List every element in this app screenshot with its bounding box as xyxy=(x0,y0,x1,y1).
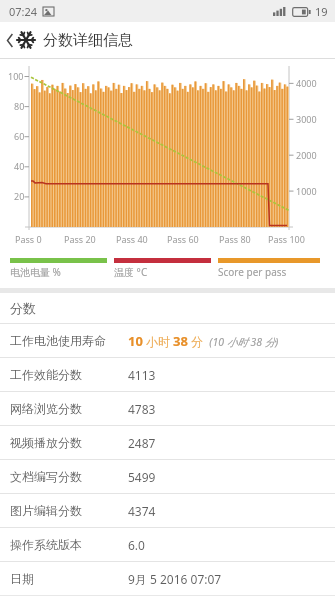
staticText: 电池电量 % xyxy=(10,265,61,279)
staticText: 2000 xyxy=(296,149,317,161)
staticText: 分数 xyxy=(10,300,36,316)
staticText: 19 xyxy=(315,4,328,19)
staticText: Pass 60 xyxy=(167,233,199,245)
button[interactable]: 操作系统版本 xyxy=(0,528,335,561)
staticText: 工作效能分数 xyxy=(10,367,128,382)
staticText: 操作系统版本 xyxy=(10,537,128,552)
button[interactable]: 视频播放分数 xyxy=(0,426,335,459)
staticText: 日期 xyxy=(10,571,128,586)
staticText: 分数详细信息 xyxy=(43,31,133,50)
staticText: 4113 xyxy=(128,367,156,383)
staticText: 文档编写分数 xyxy=(10,469,128,484)
staticText: 4000 xyxy=(296,77,317,89)
staticText: 07:24 xyxy=(9,4,38,19)
staticText: 4783 xyxy=(128,401,156,417)
staticText: 20 xyxy=(14,190,25,202)
staticText: 图片编辑分数 xyxy=(10,503,128,518)
staticText: 5499 xyxy=(128,469,156,485)
staticText: 3000 xyxy=(296,113,317,125)
button[interactable]: 图片编辑分数 xyxy=(0,494,335,527)
staticText: 80 xyxy=(14,100,25,112)
staticText: 工作电池使用寿命 xyxy=(10,333,128,348)
staticText: Score per pass xyxy=(218,265,287,279)
staticText: Pass 80 xyxy=(219,233,251,245)
button[interactable]: 文档编写分数 xyxy=(0,460,335,493)
button[interactable]: 日期 xyxy=(0,562,335,595)
staticText: 1000 xyxy=(296,185,317,197)
staticText: Pass 100 xyxy=(268,233,305,245)
staticText: Pass 0 xyxy=(15,233,42,245)
staticText: 9月 5 2016 07:07 xyxy=(128,571,222,587)
staticText: 40 xyxy=(14,160,25,172)
staticText: 4374 xyxy=(128,503,156,519)
button[interactable]: Back xyxy=(3,26,16,54)
staticText: 温度 °C xyxy=(114,265,148,279)
button[interactable]: 网络浏览分数 xyxy=(0,392,335,425)
staticText: 100 xyxy=(8,70,24,82)
staticText: 60 xyxy=(14,130,25,142)
staticText: 2487 xyxy=(128,435,156,451)
staticText: Pass 40 xyxy=(116,233,148,245)
staticText: 视频播放分数 xyxy=(10,435,128,450)
staticText: 网络浏览分数 xyxy=(10,401,128,416)
button[interactable]: 工作电池使用寿命 xyxy=(0,324,335,357)
staticText: 6.0 xyxy=(128,537,145,553)
staticText: 10 小时 38 分 (10 小时 38 分) xyxy=(128,332,279,350)
button[interactable]: 工作效能分数 xyxy=(0,358,335,391)
staticText: Pass 20 xyxy=(64,233,96,245)
